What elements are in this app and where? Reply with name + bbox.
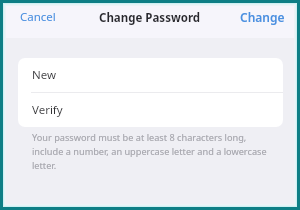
- button[interactable]: Cancel: [14, 4, 62, 30]
- staticText: Cancel: [20, 9, 56, 25]
- button[interactable]: Verify: [18, 93, 283, 127]
- staticText: New: [32, 67, 57, 83]
- staticText: Verify: [32, 102, 63, 118]
- staticText: Change: [240, 9, 285, 25]
- staticText: Change Password: [99, 10, 201, 26]
- button[interactable]: Change: [234, 4, 291, 30]
- button[interactable]: New: [18, 58, 283, 92]
- staticText: Your password must be at least 8 charact…: [32, 131, 272, 172]
